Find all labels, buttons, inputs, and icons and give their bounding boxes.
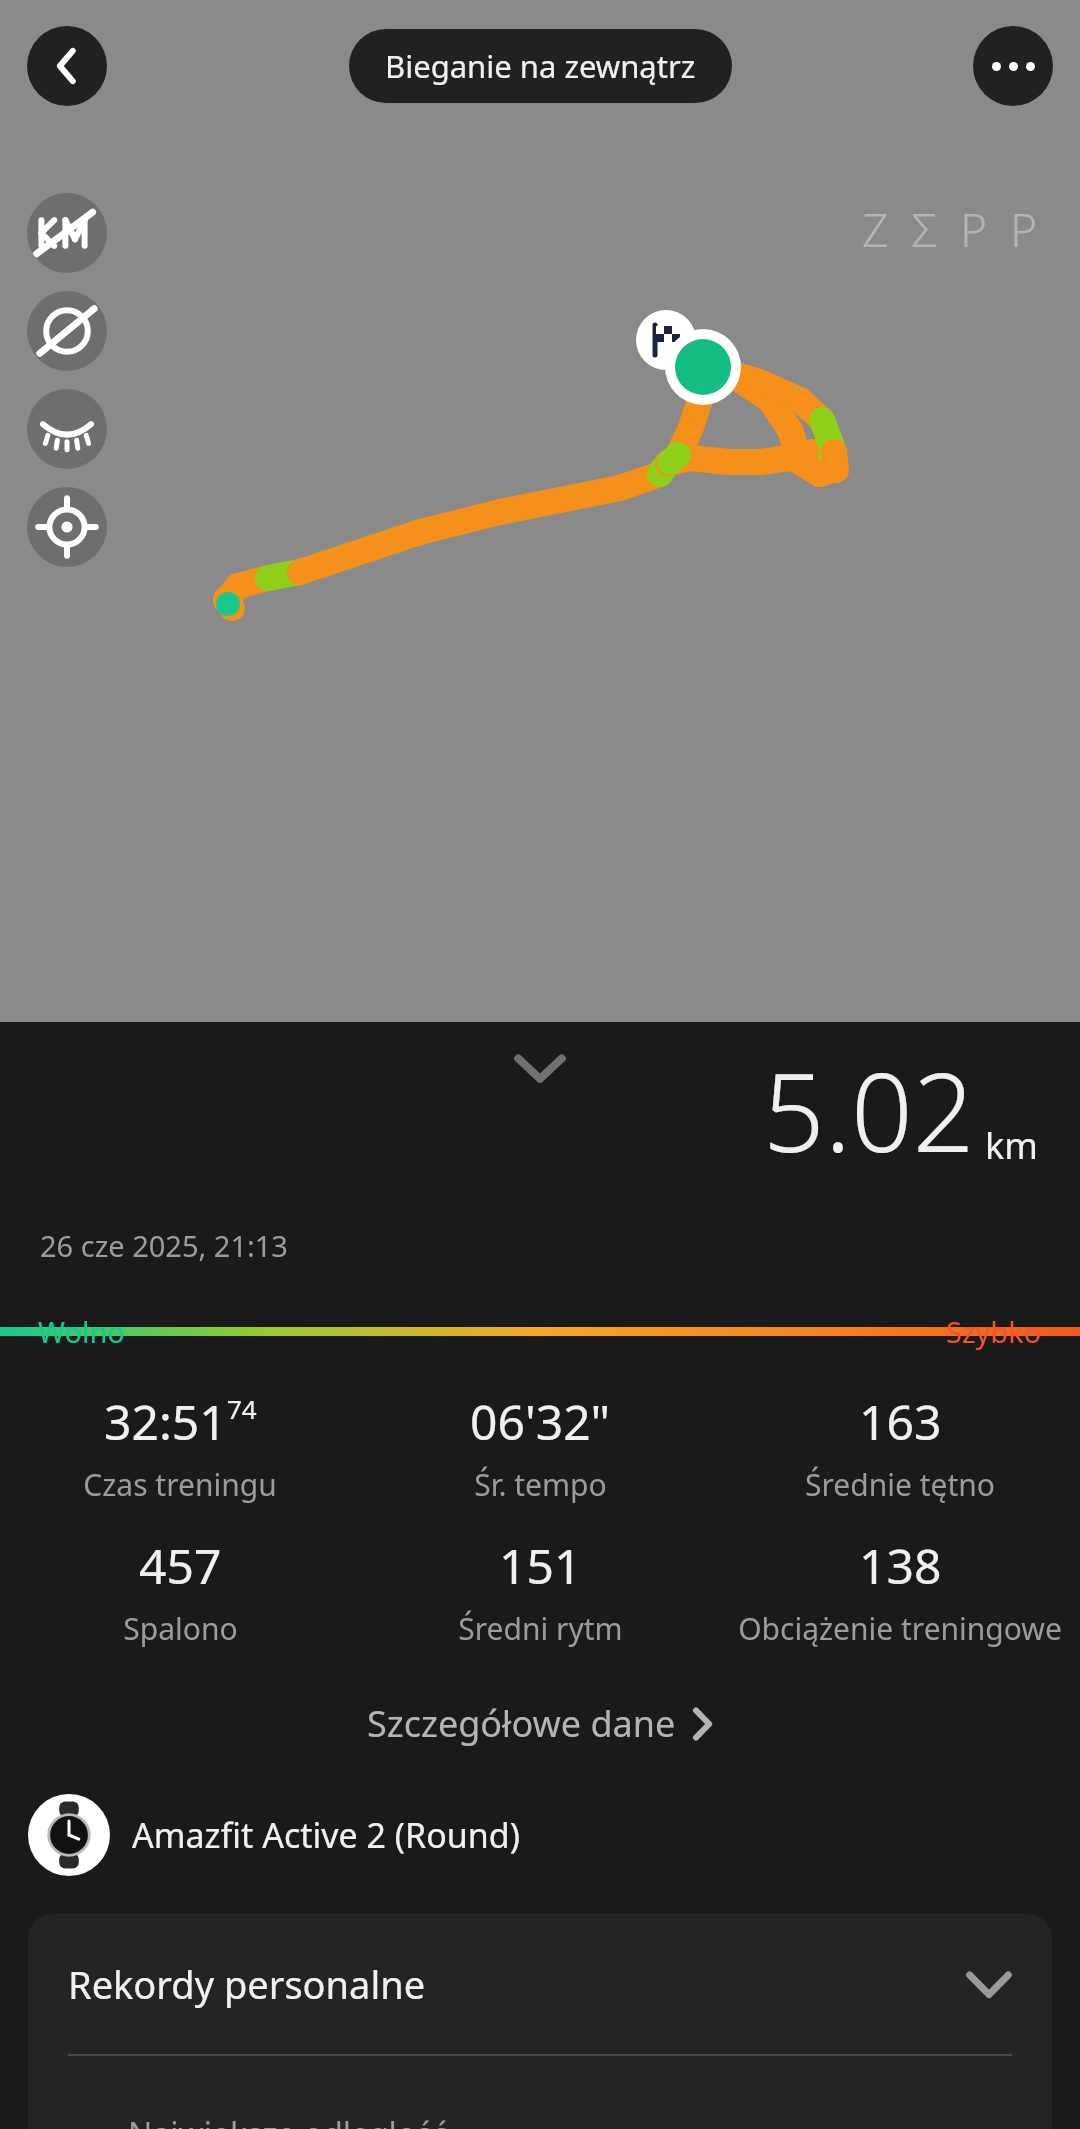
staticText: Szybko bbox=[946, 1312, 1042, 1351]
button[interactable]: Bieganie na zewnątrz bbox=[349, 29, 732, 103]
button[interactable]: 151 bbox=[360, 1533, 720, 1649]
staticText: Spalono bbox=[123, 1608, 238, 1649]
button[interactable]: Rekordy personalne bbox=[28, 1914, 1052, 2054]
button[interactable]: Toggle pace overlay bbox=[27, 291, 107, 371]
staticText: Amazfit Active 2 (Round) bbox=[132, 1812, 520, 1858]
staticText: Czas treningu bbox=[83, 1464, 277, 1505]
button[interactable]: 06'32" bbox=[360, 1389, 720, 1505]
staticText: Wolno bbox=[38, 1312, 125, 1351]
staticText: 32:51 bbox=[104, 1389, 227, 1454]
button[interactable]: 457 bbox=[0, 1533, 360, 1649]
button[interactable]: 138 bbox=[720, 1533, 1080, 1649]
staticText: P bbox=[1010, 198, 1038, 261]
button[interactable]: Collapse bbox=[490, 1040, 590, 1096]
staticText: Σ bbox=[911, 198, 938, 261]
staticText: 74 bbox=[227, 1391, 257, 1426]
button[interactable]: More options bbox=[973, 26, 1053, 106]
staticText: 457 bbox=[139, 1533, 222, 1598]
button[interactable]: Back bbox=[27, 26, 107, 106]
staticText: Z bbox=[862, 198, 889, 261]
staticText: 5.02 bbox=[763, 1037, 975, 1184]
staticText: Rekordy personalne bbox=[68, 1958, 966, 2010]
staticText: 151 bbox=[499, 1533, 582, 1598]
staticText: Średni rytm bbox=[458, 1608, 623, 1649]
staticText: 06'32" bbox=[470, 1389, 611, 1454]
button[interactable]: Toggle kilometre markers bbox=[27, 193, 107, 273]
staticText: Obciążenie treningowe bbox=[738, 1608, 1062, 1649]
button[interactable]: Hide route bbox=[27, 389, 107, 469]
staticText: Śr. tempo bbox=[474, 1464, 607, 1505]
staticText: 138 bbox=[859, 1533, 942, 1598]
staticText: Średnie tętno bbox=[805, 1464, 995, 1505]
button[interactable]: Amazfit Active 2 (Round) bbox=[0, 1788, 1080, 1882]
button[interactable]: Recenter map bbox=[27, 487, 107, 567]
staticText: km bbox=[985, 1121, 1038, 1170]
staticText: 26 cze 2025, 21:13 bbox=[40, 1226, 288, 1265]
staticText: Szczegółowe dane bbox=[367, 1699, 676, 1748]
button[interactable]: 32:51 bbox=[0, 1389, 360, 1505]
staticText: 163 bbox=[859, 1389, 942, 1454]
staticText: P bbox=[960, 198, 988, 261]
button[interactable]: Szczegółowe dane bbox=[0, 1689, 1080, 1758]
staticText: Bieganie na zewnątrz bbox=[385, 45, 696, 87]
staticText: Największe odległość bbox=[128, 2112, 448, 2129]
button[interactable]: 163 bbox=[720, 1389, 1080, 1505]
